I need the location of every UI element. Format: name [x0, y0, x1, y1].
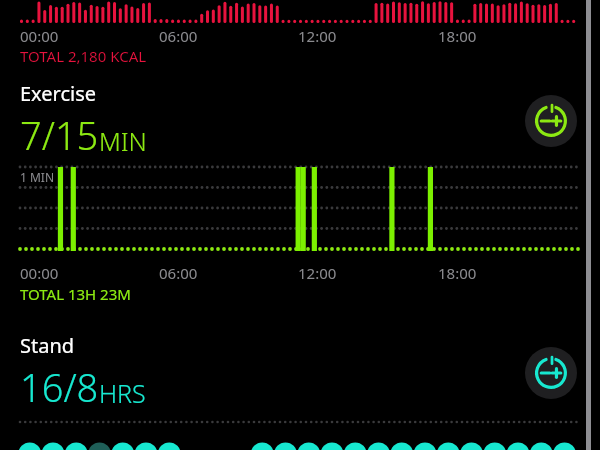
- staticText: 06:00: [159, 26, 198, 45]
- staticText: 12:00: [298, 26, 337, 45]
- staticText: 16/8: [20, 361, 99, 413]
- staticText: 1 MIN: [20, 169, 55, 185]
- staticText: MIN: [99, 124, 147, 158]
- staticText: Stand: [20, 332, 75, 359]
- staticText: 00:00: [20, 26, 59, 45]
- staticText: 18:00: [438, 26, 477, 45]
- staticText: TOTAL 13H 23M: [20, 284, 131, 304]
- staticText: 12:00: [298, 263, 337, 282]
- staticText: 06:00: [159, 263, 198, 282]
- staticText: Exercise: [20, 80, 97, 107]
- button[interactable]: Change Stand goal: [525, 347, 577, 399]
- staticText: TOTAL 2,180 KCAL: [20, 46, 147, 66]
- staticText: 7/15: [20, 109, 99, 161]
- staticText: 18:00: [438, 263, 477, 282]
- staticText: HRS: [99, 376, 146, 410]
- button[interactable]: Change Exercise goal: [525, 95, 577, 147]
- staticText: 00:00: [20, 263, 59, 282]
